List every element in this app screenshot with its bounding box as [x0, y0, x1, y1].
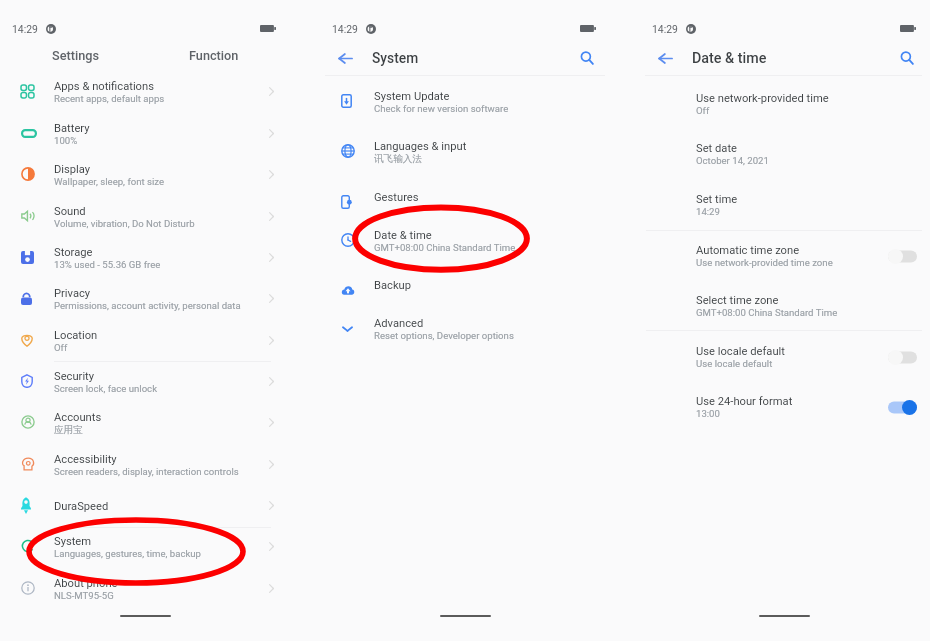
staticText: System	[54, 535, 92, 548]
staticText: Function	[189, 48, 239, 63]
staticText: Privacy	[54, 287, 91, 300]
button[interactable]: System Update	[320, 85, 620, 117]
staticText: Backup	[374, 279, 412, 292]
staticText: Languages & input	[374, 140, 467, 153]
button[interactable]: Gestures	[320, 186, 620, 218]
button[interactable]: Use network-provided time	[640, 92, 930, 117]
staticText: 14:29	[652, 23, 678, 35]
staticText: Accessibility	[54, 453, 117, 466]
staticText: Check for new version software	[374, 103, 509, 114]
button[interactable]: Battery	[0, 117, 300, 149]
staticText: Set date	[696, 142, 737, 155]
staticText: Use 24-hour format	[696, 395, 793, 408]
staticText: 13% used - 55.36 GB free	[54, 259, 161, 270]
staticText: Storage	[54, 246, 93, 259]
button[interactable]: Accounts	[0, 406, 300, 438]
staticText: 应用宝	[54, 424, 83, 436]
staticText: Reset options, Developer options	[374, 330, 514, 341]
staticText: Permissions, account activity, personal …	[54, 300, 241, 311]
staticText: 14:29	[696, 206, 720, 217]
button[interactable]: Back	[654, 47, 676, 69]
staticText: Location	[54, 329, 98, 342]
button[interactable]: Set time	[640, 193, 930, 218]
staticText: GMT+08:00 China Standard Time	[696, 307, 838, 318]
button[interactable]: Use 24-hour format	[640, 395, 930, 420]
staticText: Wallpaper, sleep, font size	[54, 176, 165, 187]
staticText: Sound	[54, 205, 86, 218]
button[interactable]: Set date	[640, 142, 930, 167]
staticText: Date & time	[374, 229, 432, 242]
button[interactable]: Back	[334, 47, 356, 69]
button[interactable]: Backup	[320, 274, 620, 306]
button[interactable]: Apps & notifications	[0, 75, 300, 107]
button[interactable]: Sound	[0, 200, 300, 232]
staticText: About phone	[54, 577, 118, 590]
staticText: GMT+08:00 China Standard Time	[374, 242, 516, 253]
staticText: NLS-MT95-5G	[54, 590, 114, 601]
button[interactable]	[874, 395, 930, 420]
button[interactable]: Location	[0, 324, 300, 356]
button[interactable]: Automatic time zone	[640, 244, 930, 269]
button[interactable]: Advanced	[320, 312, 620, 344]
staticText: Apps & notifications	[54, 80, 154, 93]
staticText: Languages, gestures, time, backup	[54, 548, 201, 559]
button[interactable]: DuraSpeed	[0, 489, 300, 521]
staticText: Off	[54, 342, 68, 353]
staticText: Off	[696, 105, 710, 116]
staticText: Set time	[696, 193, 738, 206]
staticText: 100%	[54, 135, 78, 146]
staticText: Use network-provided time	[696, 92, 829, 105]
button[interactable]	[874, 345, 930, 370]
button[interactable]: System	[0, 530, 300, 562]
button[interactable]: Use locale default	[640, 345, 930, 370]
button[interactable]: Accessibility	[0, 448, 300, 480]
staticText: Advanced	[374, 317, 424, 330]
button[interactable]: Date & time	[320, 224, 620, 256]
button[interactable]: Display	[0, 158, 300, 190]
button[interactable]: Search	[896, 47, 918, 69]
staticText: Use locale default	[696, 345, 785, 358]
button[interactable]: Select time zone	[640, 294, 930, 319]
staticText: System	[372, 50, 419, 66]
staticText: October 14, 2021	[696, 155, 769, 166]
button[interactable]: About phone	[0, 572, 300, 604]
button[interactable]: Languages & input	[320, 135, 620, 167]
button[interactable]: Security	[0, 365, 300, 397]
staticText: DuraSpeed	[54, 500, 109, 513]
staticText: Display	[54, 163, 91, 176]
staticText: Use network-provided time zone	[696, 257, 833, 268]
staticText: Screen lock, face unlock	[54, 383, 158, 394]
staticText: Automatic time zone	[696, 244, 800, 257]
staticText: Date & time	[692, 50, 767, 67]
staticText: Security	[54, 370, 95, 383]
staticText: System Update	[374, 90, 450, 103]
button[interactable]: Search	[576, 47, 598, 69]
staticText: Use locale default	[696, 358, 773, 369]
button[interactable]	[874, 244, 930, 269]
staticText: Volume, vibration, Do Not Disturb	[54, 218, 195, 229]
staticText: Gestures	[374, 191, 419, 204]
staticText: Recent apps, default apps	[54, 93, 165, 104]
staticText: 14:29	[12, 23, 38, 35]
button[interactable]: Privacy	[0, 282, 300, 314]
staticText: 14:29	[332, 23, 358, 35]
staticText: Screen readers, display, interaction con…	[54, 466, 239, 477]
staticText: Select time zone	[696, 294, 779, 307]
staticText: Accounts	[54, 411, 102, 424]
button[interactable]: Storage	[0, 241, 300, 273]
staticText: Settings	[52, 48, 99, 63]
staticText: 讯飞输入法	[374, 153, 422, 165]
staticText: Battery	[54, 122, 90, 135]
staticText: 13:00	[696, 408, 720, 419]
